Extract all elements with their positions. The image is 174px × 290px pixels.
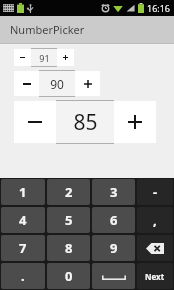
staticText: 90	[50, 76, 64, 92]
staticText: .	[21, 267, 25, 285]
staticText: 16:16	[147, 2, 171, 14]
staticText: 6	[110, 211, 118, 229]
button[interactable]: 8	[47, 235, 90, 261]
button[interactable]: 6	[92, 207, 135, 233]
staticText: 3	[110, 183, 118, 201]
button[interactable]: 91	[31, 49, 57, 66]
button[interactable]: Increment 91	[57, 49, 74, 66]
button[interactable]: 5	[47, 207, 90, 233]
button[interactable]: 90	[39, 71, 75, 96]
staticText: ,	[153, 211, 157, 229]
button[interactable]: Space	[92, 263, 135, 289]
staticText: 5	[65, 211, 73, 229]
button[interactable]: 85	[56, 101, 114, 143]
button[interactable]: 1	[1, 179, 45, 205]
staticText: 91	[39, 52, 50, 64]
button[interactable]: 2	[47, 179, 90, 205]
button[interactable]: Decrement 85	[14, 101, 56, 143]
staticText: 7	[19, 239, 27, 257]
staticText: NumberPicker	[10, 22, 85, 37]
staticText: 85	[73, 108, 98, 137]
button[interactable]: 4	[1, 207, 45, 233]
staticText: 9	[110, 239, 118, 257]
button[interactable]: 3	[92, 179, 135, 205]
button[interactable]: Next	[137, 263, 173, 289]
staticText: Next	[145, 271, 165, 282]
staticText: 4	[19, 211, 27, 229]
staticText: 0	[65, 267, 73, 285]
staticText: -	[153, 183, 158, 201]
button[interactable]: Period	[1, 263, 45, 289]
staticText: 1	[19, 183, 27, 201]
button[interactable]: Decrement 91	[14, 49, 31, 66]
button[interactable]: Dash	[137, 179, 173, 205]
button[interactable]: 7	[1, 235, 45, 261]
button[interactable]: Increment 85	[114, 101, 156, 143]
button[interactable]: Comma	[137, 207, 173, 233]
button[interactable]: Decrement 90	[14, 71, 39, 96]
button[interactable]: 0	[47, 263, 90, 289]
staticText: 2	[65, 183, 73, 201]
button[interactable]: Delete	[137, 235, 173, 261]
button[interactable]: Increment 90	[75, 71, 100, 96]
button[interactable]: 9	[92, 235, 135, 261]
staticText: 8	[65, 239, 73, 257]
